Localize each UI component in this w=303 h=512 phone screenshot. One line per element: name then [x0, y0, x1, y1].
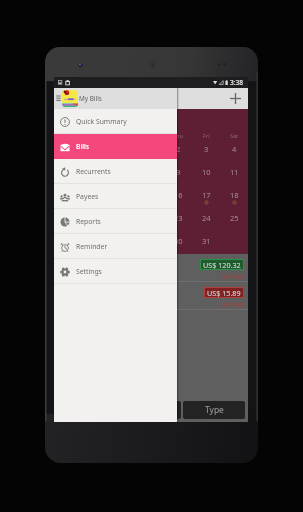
- staticText: US$ 15.89: [207, 288, 241, 297]
- staticText: Payees: [76, 192, 99, 201]
- staticText: My Bills: [79, 94, 102, 103]
- staticText: Type: [205, 404, 224, 416]
- button[interactable]: Reports: [54, 209, 177, 234]
- staticText: Wed: [144, 132, 156, 139]
- staticText: 3: [204, 144, 209, 154]
- staticText: UnPaid: [221, 300, 244, 309]
- staticText: 19: [63, 213, 72, 223]
- button[interactable]: Quick Summary: [54, 109, 177, 134]
- staticText: 6: [92, 167, 97, 177]
- staticText: Settings: [76, 267, 102, 276]
- button[interactable]: Reminder: [54, 234, 177, 259]
- staticText: 10: [202, 167, 211, 177]
- staticText: 5: [65, 167, 70, 177]
- button[interactable]: Date: [119, 401, 181, 419]
- staticText: Thu: [173, 132, 183, 139]
- staticText: Sat: [230, 132, 239, 139]
- staticText: 27: [90, 236, 99, 246]
- staticText: 31: [202, 236, 211, 246]
- staticText: UnPaid: [221, 272, 244, 281]
- staticText: 2: [176, 144, 181, 154]
- staticText: 4: [232, 144, 237, 154]
- staticText: Recurrents: [76, 167, 111, 176]
- button[interactable]: Recurrents: [54, 159, 177, 184]
- staticText: 17: [202, 190, 211, 200]
- staticText: 20: [90, 213, 99, 223]
- button[interactable]: US$ 15.89: [54, 282, 248, 310]
- staticText: Reminder: [76, 242, 108, 251]
- staticText: 30: [174, 236, 183, 246]
- staticText: 12: [63, 190, 72, 200]
- button[interactable]: Payees: [54, 184, 177, 209]
- staticText: 9: [176, 167, 181, 177]
- staticText: Reports: [76, 217, 101, 226]
- staticText: Tue: [117, 132, 127, 139]
- staticText: Quick Summary: [76, 117, 127, 126]
- staticText: 24: [202, 213, 211, 223]
- staticText: Mon: [89, 132, 101, 139]
- staticText: US$ 120.32: [203, 260, 241, 269]
- button[interactable]: US$ 120.32: [54, 254, 248, 282]
- staticText: 16: [174, 190, 183, 200]
- staticText: 25: [230, 213, 239, 223]
- staticText: 26: [63, 236, 72, 246]
- staticText: Fri: [203, 132, 210, 139]
- staticText: 18: [230, 190, 239, 200]
- button[interactable]: Add bill: [225, 88, 246, 109]
- button[interactable]: Bills: [54, 134, 177, 159]
- button[interactable]: Settings: [54, 259, 177, 284]
- button[interactable]: Open navigation drawer: [55, 88, 62, 109]
- staticText: Sun: [63, 132, 73, 139]
- staticText: Sep: [57, 117, 70, 127]
- staticText: 11: [230, 167, 239, 177]
- staticText: Bills: [76, 142, 89, 151]
- button[interactable]: Type: [183, 401, 245, 419]
- staticText: 13: [90, 190, 99, 200]
- staticText: 23: [174, 213, 183, 223]
- staticText: 3:38: [230, 78, 244, 87]
